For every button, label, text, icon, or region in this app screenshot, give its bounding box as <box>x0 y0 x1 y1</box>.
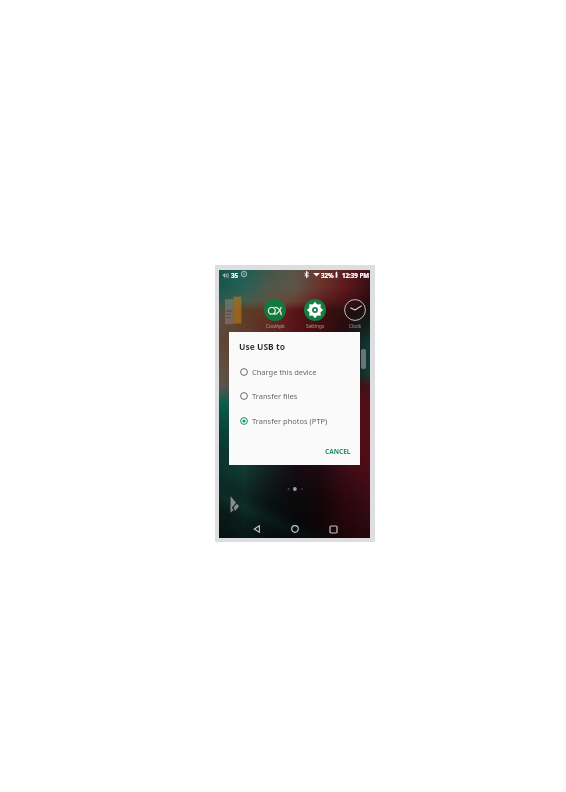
staticText: Settings <box>306 323 325 330</box>
button[interactable]: Transfer photos (PTP) <box>229 413 360 428</box>
button[interactable]: CoolApk <box>257 299 293 331</box>
staticText: 12:39 PM <box>342 271 370 279</box>
staticText: Transfer files <box>252 391 298 401</box>
staticText: Transfer photos (PTP) <box>252 416 328 426</box>
staticText: Use USB to <box>239 341 285 353</box>
staticText: CoolApk <box>266 323 285 330</box>
staticText: 32% <box>321 271 334 279</box>
staticText: 35 <box>231 271 239 279</box>
button[interactable]: Home <box>285 519 305 538</box>
button[interactable]: Back <box>247 519 267 538</box>
staticText: Clock <box>349 323 362 330</box>
button[interactable]: Transfer files <box>229 388 360 403</box>
staticText: CANCEL <box>325 447 351 456</box>
button[interactable]: Settings <box>297 299 333 331</box>
button[interactable]: Play Store <box>230 496 239 513</box>
button[interactable]: Clock <box>337 299 370 331</box>
button[interactable]: CANCEL <box>323 445 352 457</box>
staticText: Charge this device <box>252 367 317 377</box>
button[interactable]: Recent apps <box>323 519 343 538</box>
button[interactable]: Charge this device <box>229 364 360 379</box>
